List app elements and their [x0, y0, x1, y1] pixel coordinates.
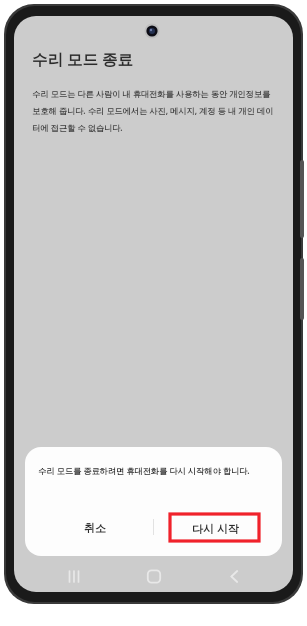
- other: Volume buttons: [300, 160, 304, 238]
- other: Power button: [300, 258, 304, 320]
- staticText: 수리 모드는 다른 사람이 내 휴대전화를 사용하는 동안 개인정보를 보호해 …: [32, 88, 275, 146]
- staticText: 수리 모드를 종료하려면 휴대전화를 다시 시작해야 합니다.: [38, 465, 266, 501]
- button[interactable]: 다시 시작: [164, 509, 270, 547]
- staticText: 취소: [84, 521, 106, 535]
- button[interactable]: Recents: [44, 561, 104, 592]
- staticText: 다시 시작: [192, 521, 239, 536]
- button[interactable]: Home: [124, 561, 184, 592]
- staticText: 수리 모드 종료: [32, 48, 134, 69]
- button[interactable]: Back: [204, 561, 264, 592]
- button[interactable]: 취소: [38, 509, 152, 547]
